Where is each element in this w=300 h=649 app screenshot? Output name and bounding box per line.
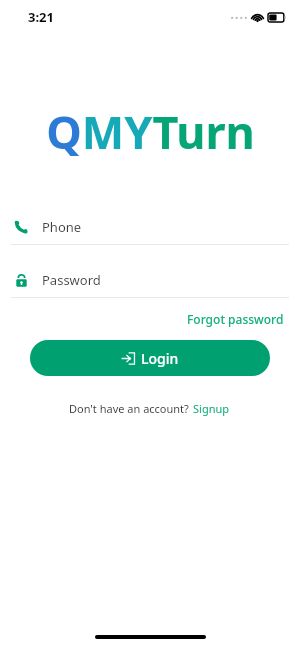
staticText: Phone xyxy=(42,218,82,236)
other: Phone xyxy=(14,220,28,234)
staticText: Forgot password xyxy=(187,311,284,327)
button[interactable]: Password xyxy=(0,262,300,297)
staticText: Signup xyxy=(193,401,230,416)
button[interactable]: Forgot password xyxy=(171,307,300,331)
button[interactable]: Phone xyxy=(0,209,300,244)
other: Password xyxy=(15,274,28,287)
button[interactable]: Login xyxy=(30,340,270,376)
button[interactable]: Signup xyxy=(192,398,231,419)
staticText: Password xyxy=(42,271,101,289)
staticText: Login xyxy=(141,349,179,368)
staticText: 3:21 xyxy=(28,8,54,26)
staticText: Don't have an account? xyxy=(69,401,192,416)
staticText: QMYTurn xyxy=(46,101,255,162)
